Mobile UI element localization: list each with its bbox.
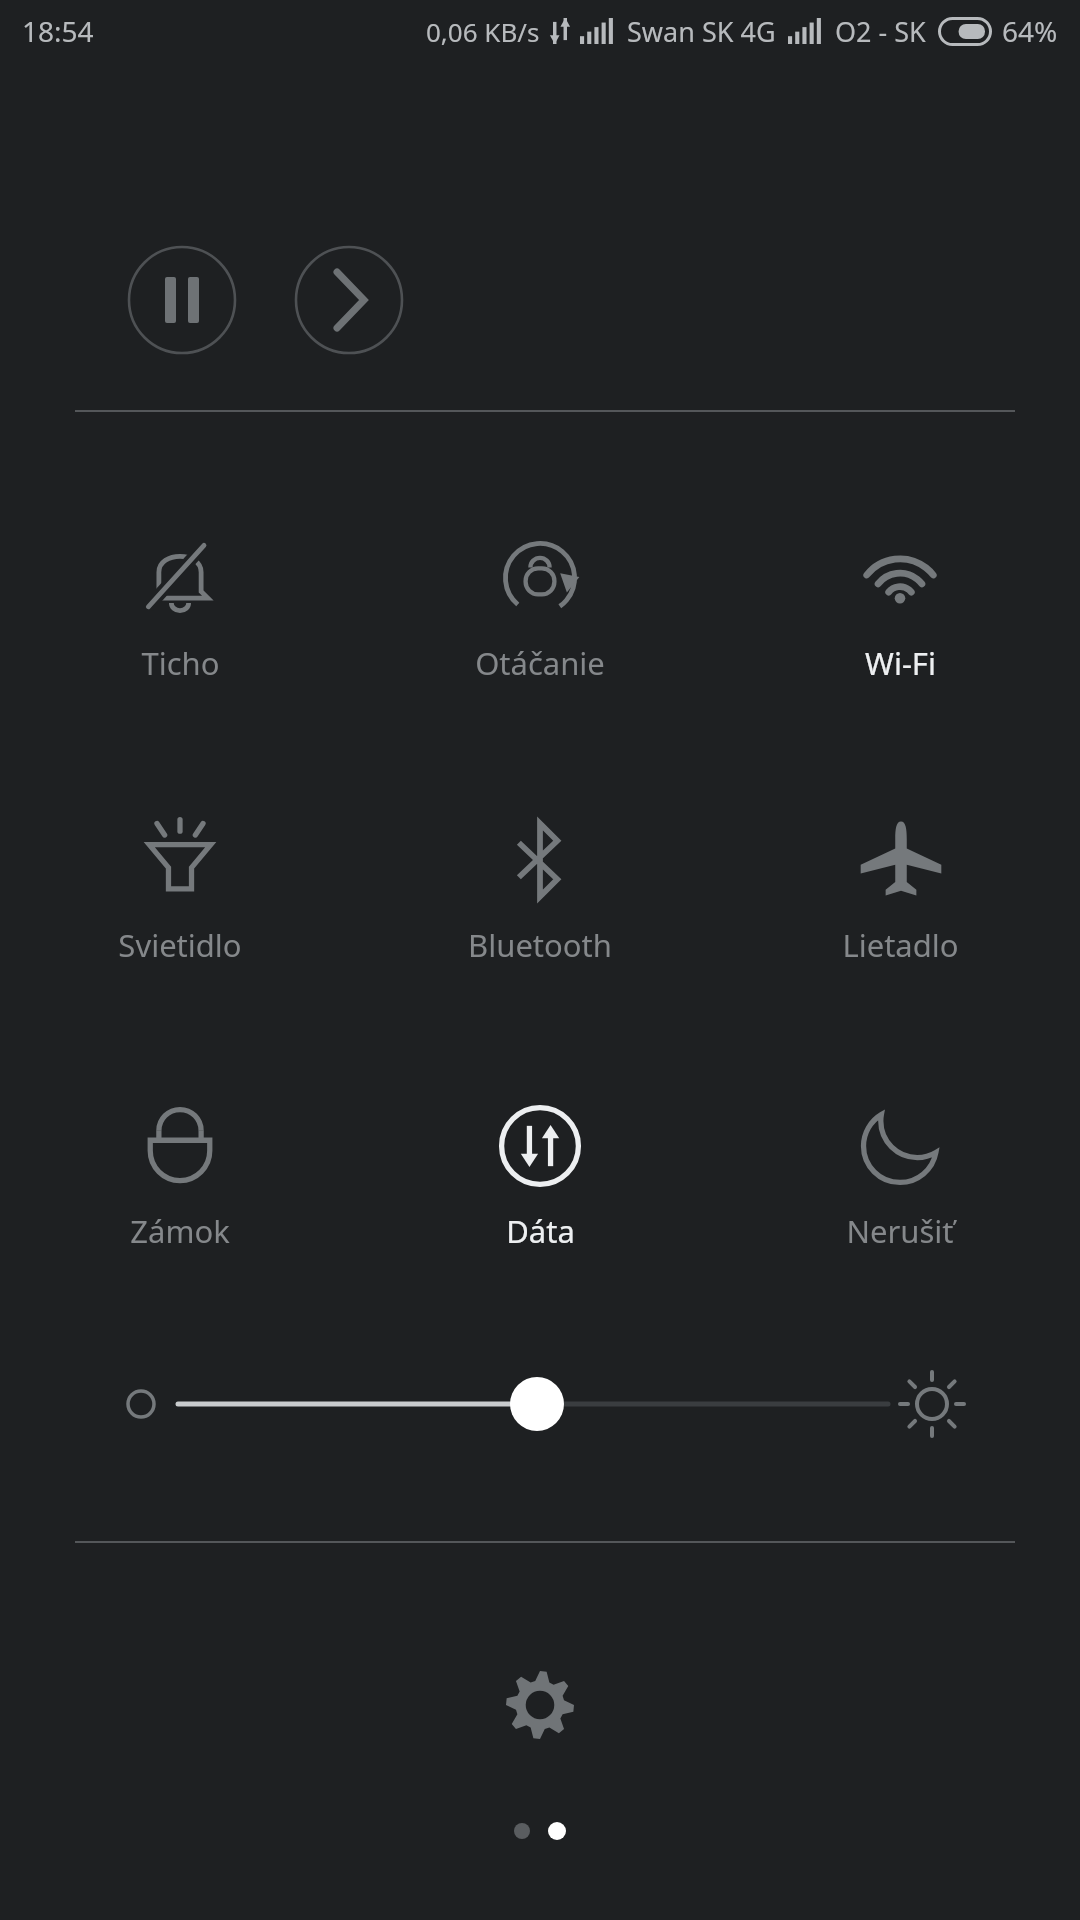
staticText: Ticho — [141, 642, 220, 684]
button[interactable]: Svietidlo — [20, 782, 340, 1012]
staticText: 18:54 — [22, 12, 94, 50]
button[interactable]: Pause — [127, 245, 237, 355]
staticText: Wi-Fi — [865, 642, 936, 684]
button[interactable]: Bluetooth — [380, 782, 700, 1012]
staticText: Swan SK 4G — [627, 13, 776, 50]
button[interactable]: Otáčanie — [380, 500, 700, 730]
button[interactable]: Settings — [480, 1645, 600, 1765]
staticText: Otáčanie — [475, 642, 605, 684]
staticText: O2 - SK — [835, 13, 926, 50]
button[interactable]: Lietadlo — [740, 782, 1060, 1012]
staticText: Zámok — [130, 1210, 230, 1252]
button[interactable]: Wi-Fi — [740, 500, 1060, 730]
staticText: Lietadlo — [842, 924, 959, 966]
button[interactable]: Dáta — [380, 1068, 700, 1298]
staticText: Nerušiť — [846, 1210, 954, 1252]
button[interactable]: Next track — [294, 245, 404, 355]
staticText: Bluetooth — [468, 924, 612, 966]
staticText: 0,06 KB/s — [426, 14, 540, 49]
staticText: Dáta — [506, 1210, 575, 1252]
staticText: Svietidlo — [118, 924, 242, 966]
button[interactable]: Nerušiť — [740, 1068, 1060, 1298]
button[interactable]: Brightness — [0, 1368, 1080, 1440]
button[interactable]: Ticho — [20, 500, 340, 730]
staticText: 64% — [1002, 12, 1058, 50]
button[interactable]: Zámok — [20, 1068, 340, 1298]
